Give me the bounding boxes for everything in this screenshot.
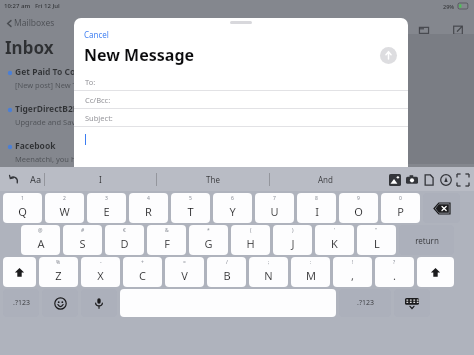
button[interactable]: Attach file <box>420 171 437 188</box>
button[interactable]: ? <box>375 257 414 287</box>
button[interactable]: Subject: <box>74 109 408 127</box>
button[interactable]: Take photo <box>403 171 420 188</box>
button[interactable]: Dictation <box>81 289 117 317</box>
button[interactable]: + <box>123 257 162 287</box>
button[interactable]: 6 <box>213 193 252 223</box>
button[interactable]: Send <box>380 47 397 64</box>
button[interactable]: Get Paid To Com <box>5 66 84 90</box>
staticText: T <box>187 204 194 219</box>
staticText: 1 <box>21 195 24 202</box>
staticText: K <box>331 236 338 251</box>
button[interactable]: To: <box>74 73 408 91</box>
staticText: 8 <box>315 195 318 202</box>
button[interactable]: ; <box>249 257 288 287</box>
staticText: I <box>99 174 102 185</box>
staticText: @ <box>38 227 43 234</box>
staticText: New Message <box>84 44 195 66</box>
staticText: F <box>164 236 170 251</box>
staticText: / <box>226 259 228 266</box>
button[interactable]: 4 <box>129 193 168 223</box>
staticText: I <box>315 204 319 219</box>
button[interactable]: The <box>156 167 269 191</box>
staticText: A <box>37 236 45 251</box>
staticText: .?123 <box>357 298 374 308</box>
button[interactable]: ! <box>333 257 372 287</box>
button[interactable]: TigerDirectB2B <box>5 103 80 127</box>
button[interactable]: 1 <box>3 193 42 223</box>
button[interactable]: 5 <box>171 193 210 223</box>
staticText: H <box>246 236 255 251</box>
button[interactable]: 2 <box>45 193 84 223</box>
button[interactable]: Compose <box>448 20 468 40</box>
button[interactable]: Markup <box>437 171 454 188</box>
staticText: U <box>270 204 279 219</box>
button[interactable]: = <box>165 257 204 287</box>
staticText: 7 <box>273 195 276 202</box>
button[interactable]: # <box>63 225 102 255</box>
staticText: ( <box>250 227 252 234</box>
button[interactable]: Insert photo <box>386 171 403 188</box>
staticText: TigerDirectB2B <box>15 103 79 115</box>
staticText: S <box>79 236 86 251</box>
button[interactable]: 8 <box>297 193 336 223</box>
staticText: The <box>206 174 220 185</box>
staticText: - <box>100 259 102 266</box>
button[interactable]: Move to folder <box>414 20 434 40</box>
button[interactable]: Emoji <box>42 289 78 317</box>
button[interactable]: I <box>44 167 156 191</box>
button[interactable]: .?123 <box>339 289 391 317</box>
staticText: N <box>264 268 273 283</box>
button[interactable]: .?123 <box>3 289 39 317</box>
button[interactable]: ) <box>273 225 312 255</box>
button[interactable]: Cc/Bcc: <box>74 91 408 109</box>
staticText: J <box>291 236 295 251</box>
button[interactable]: € <box>105 225 144 255</box>
button[interactable]: / <box>207 257 246 287</box>
staticText: W <box>59 204 70 219</box>
button[interactable]: Hide keyboard <box>394 289 430 317</box>
staticText: Y <box>229 204 236 219</box>
staticText: * <box>207 227 210 234</box>
button[interactable]: @ <box>21 225 60 255</box>
staticText: 9 <box>357 195 360 202</box>
staticText: Facebook <box>15 140 56 152</box>
button[interactable]: * <box>189 225 228 255</box>
button[interactable]: & <box>147 225 186 255</box>
button[interactable]: ( <box>231 225 270 255</box>
staticText: X <box>97 268 104 283</box>
button[interactable]: ' <box>315 225 354 255</box>
button[interactable]: 3 <box>87 193 126 223</box>
button[interactable]: 0 <box>381 193 420 223</box>
button[interactable]: % <box>39 257 78 287</box>
button[interactable]: - <box>81 257 120 287</box>
staticText: + <box>141 259 144 266</box>
button[interactable]: Scan <box>454 171 471 188</box>
staticText: O <box>354 204 363 219</box>
staticText: 5 <box>189 195 192 202</box>
staticText: ; <box>268 259 270 266</box>
button[interactable]: Facebook <box>5 140 80 164</box>
staticText: Inbox <box>5 36 54 59</box>
button[interactable]: Shift <box>417 257 454 287</box>
button[interactable]: Cancel <box>74 28 117 41</box>
button[interactable]: " <box>357 225 396 255</box>
staticText: B <box>223 268 231 283</box>
button[interactable]: Mailboxes <box>5 16 55 30</box>
button[interactable]: return <box>399 225 454 255</box>
button[interactable]: Backspace <box>423 193 460 223</box>
button[interactable]: Aa <box>28 173 44 185</box>
button[interactable]: 7 <box>255 193 294 223</box>
button[interactable]: Undo <box>6 171 22 187</box>
staticText: L <box>374 236 380 251</box>
button[interactable]: 9 <box>339 193 378 223</box>
staticText: 3 <box>105 195 108 202</box>
staticText: D <box>120 236 129 251</box>
button[interactable]: And <box>269 167 382 191</box>
staticText: 29% <box>443 3 455 10</box>
button[interactable]: : <box>291 257 330 287</box>
staticText: [New post] New Ta <box>15 80 81 90</box>
staticText: 4 <box>147 195 150 202</box>
button[interactable]: Shift <box>3 257 36 287</box>
